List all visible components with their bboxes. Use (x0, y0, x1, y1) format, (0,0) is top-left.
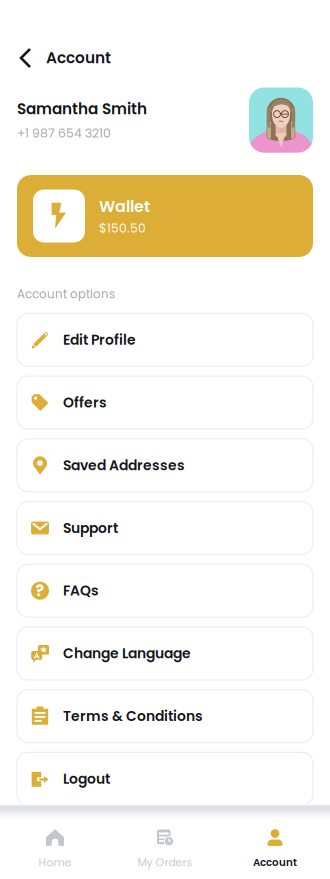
staticText: Terms & Conditions (63, 706, 203, 726)
button[interactable]: Logout (17, 752, 313, 805)
button[interactable]: Saved Addresses (17, 439, 313, 492)
button[interactable]: Edit Profile (17, 313, 313, 366)
staticText: $150.50 (99, 219, 146, 237)
button[interactable]: ? (17, 564, 313, 617)
staticText: Samantha Smith (17, 98, 147, 120)
staticText: Support (63, 518, 118, 538)
staticText: Wallet (99, 195, 150, 217)
button[interactable]: Terms & Conditions (17, 690, 313, 743)
staticText: Home (38, 855, 71, 870)
button[interactable]: Back (13, 45, 39, 71)
button[interactable]: Support (17, 501, 313, 554)
button[interactable]: Account (220, 818, 330, 879)
button[interactable]: Offers (17, 376, 313, 429)
button[interactable]: My Orders (110, 818, 220, 879)
staticText: FAQs (63, 581, 99, 600)
button[interactable]: Change Language (17, 627, 313, 680)
staticText: Logout (63, 769, 110, 788)
staticText: ? (35, 579, 44, 602)
staticText: Saved Addresses (63, 456, 185, 475)
staticText: Edit Profile (63, 330, 136, 350)
staticText: Account options (17, 286, 115, 302)
staticText: Change Language (63, 644, 191, 663)
staticText: Offers (63, 393, 107, 412)
staticText: Account (253, 855, 297, 870)
staticText: +1 987 654 3210 (17, 125, 111, 142)
button[interactable]: Wallet (17, 175, 313, 257)
staticText: Account (46, 47, 111, 69)
button[interactable]: Home (0, 818, 110, 879)
staticText: My Orders (137, 855, 192, 870)
